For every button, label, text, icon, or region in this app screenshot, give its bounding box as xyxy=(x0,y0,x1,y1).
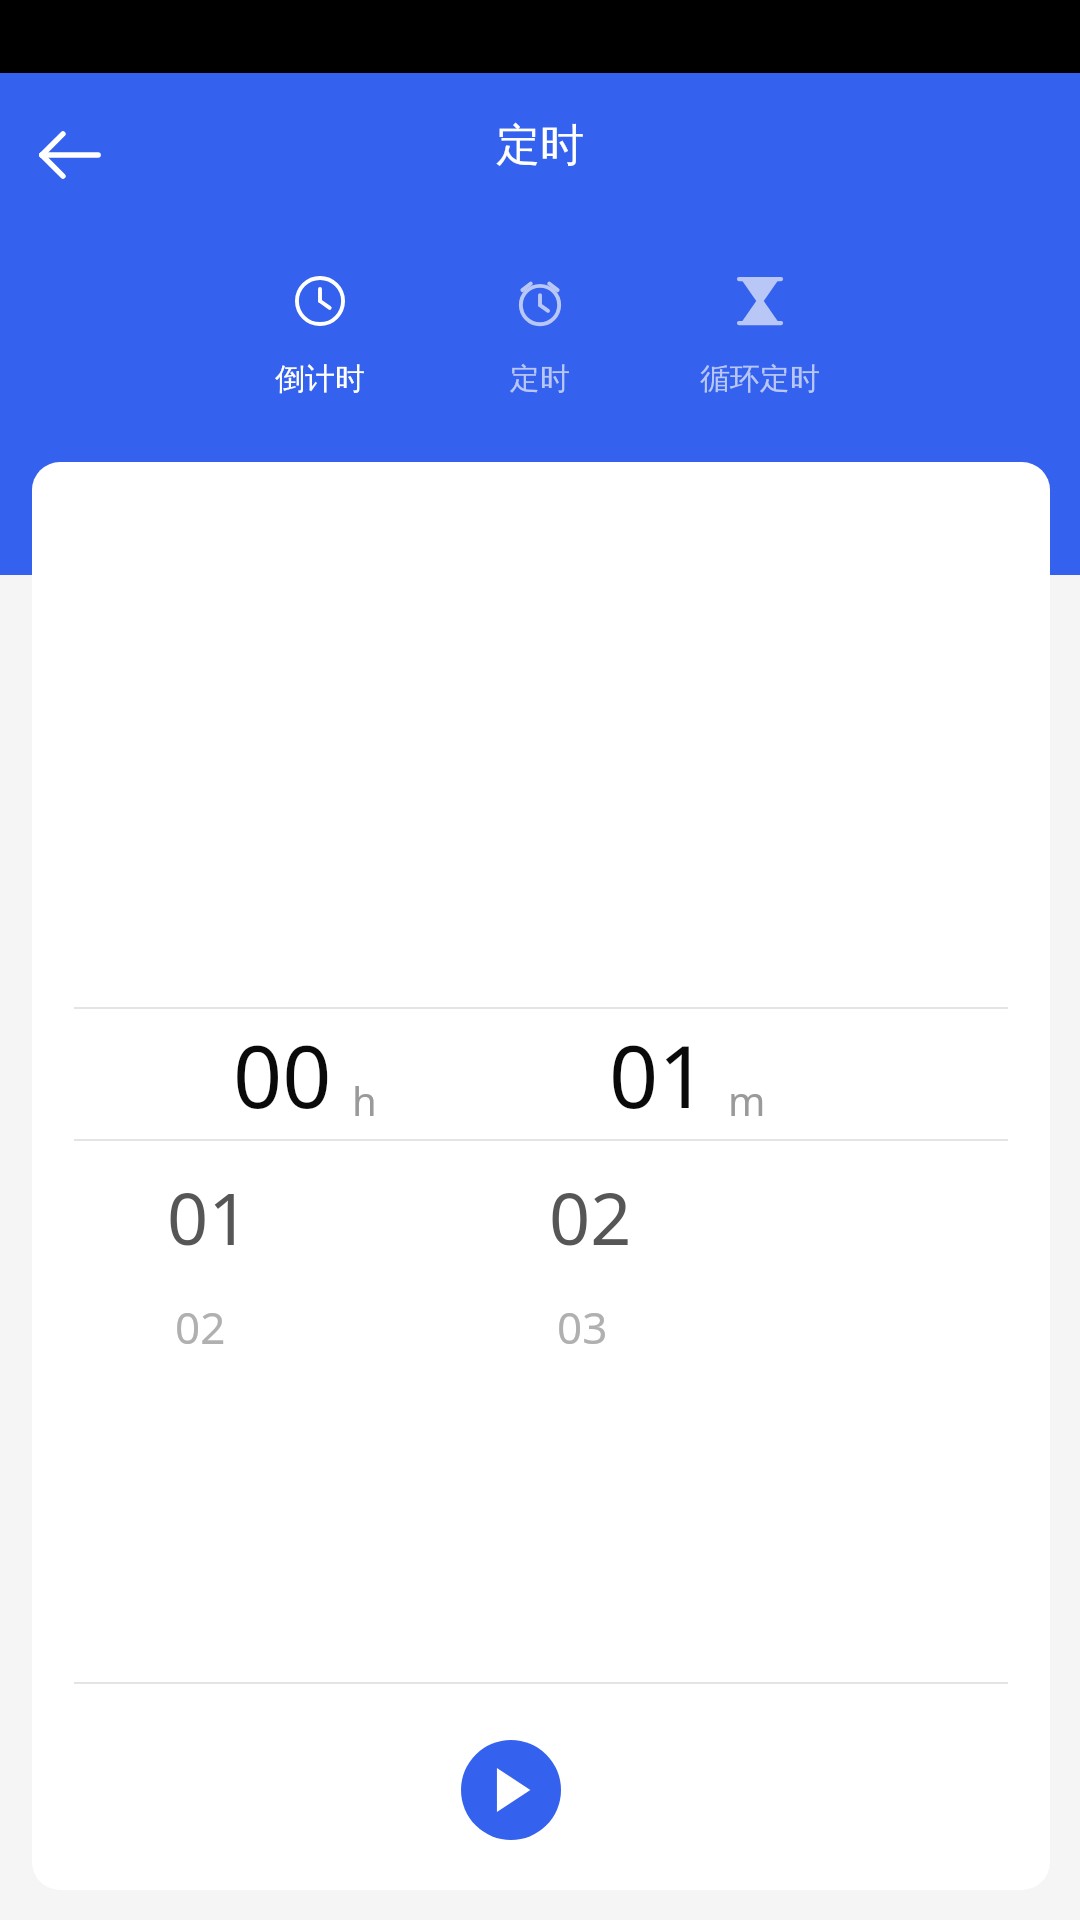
staticText: 倒计时 xyxy=(275,360,365,398)
staticText: 03 xyxy=(557,1297,608,1357)
staticText: 01 xyxy=(167,1168,250,1266)
staticText: 00 xyxy=(233,1016,332,1133)
staticText: 定时 xyxy=(496,118,584,173)
staticText: 循环定时 xyxy=(700,360,820,398)
staticText: 01 xyxy=(609,1016,708,1133)
staticText: 定时 xyxy=(510,360,570,398)
button[interactable]: Back xyxy=(18,103,122,207)
staticText: h xyxy=(352,1073,377,1127)
button[interactable]: 循环定时 xyxy=(680,268,840,402)
button[interactable]: Start timer xyxy=(461,1740,561,1840)
staticText: m xyxy=(728,1073,766,1127)
button[interactable]: 定时 xyxy=(460,268,620,402)
staticText: 02 xyxy=(549,1168,632,1266)
button[interactable]: 倒计时 xyxy=(240,268,400,402)
button[interactable]: 01 xyxy=(527,1007,847,1141)
button[interactable]: 00 xyxy=(145,1007,465,1141)
staticText: 02 xyxy=(175,1297,226,1357)
